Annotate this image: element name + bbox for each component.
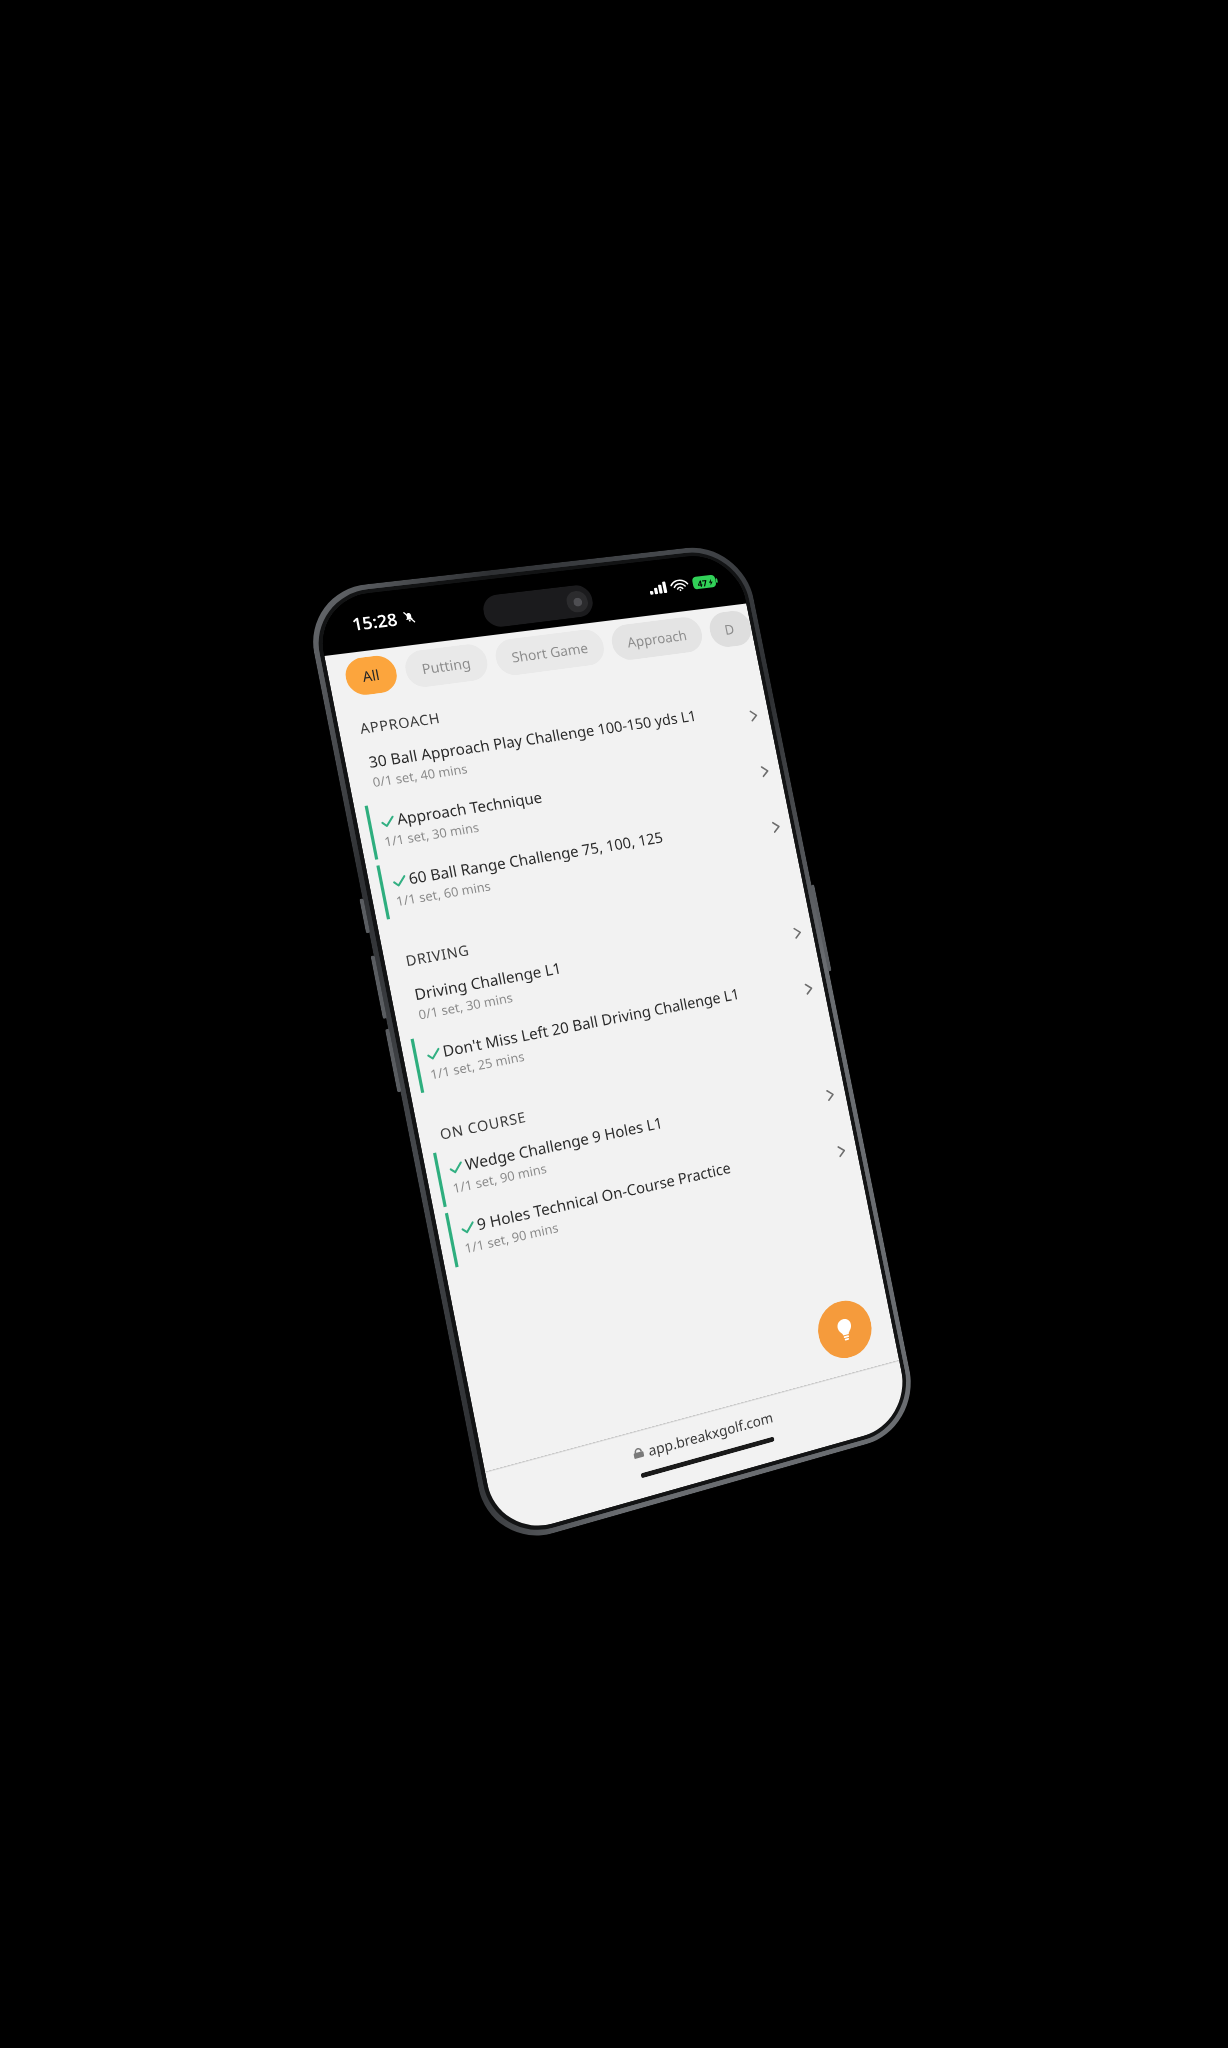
staticText: Driving Challenge L1 — [413, 957, 563, 1004]
staticText: 0/1 set, 30 mins — [417, 989, 515, 1024]
staticText: Short Game — [510, 638, 590, 666]
staticText: APPROACH — [358, 708, 442, 738]
staticText: 1/1 set, 90 mins — [451, 1160, 548, 1197]
staticText: Putting — [420, 653, 473, 678]
button[interactable]: Putting — [402, 642, 491, 689]
staticText: 1/1 set, 90 mins — [463, 1219, 560, 1257]
staticText: 0/1 set, 40 mins — [371, 760, 469, 791]
staticText: 1/1 set, 25 mins — [429, 1048, 526, 1083]
button[interactable]: New practice — [813, 1295, 876, 1364]
button[interactable]: Approach Technique — [354, 741, 785, 864]
button[interactable]: Approach — [609, 615, 705, 662]
staticText: Wedge Challenge 9 Holes L1 — [463, 1112, 664, 1174]
staticText: 9 Holes Technical On-Course Practice — [475, 1157, 732, 1234]
staticText: Driving — [723, 619, 738, 639]
button[interactable]: Driving Challenge L1 — [388, 902, 818, 1038]
button[interactable]: Driving — [706, 609, 754, 649]
button[interactable]: 30 Ball Approach Play Challenge 100-150 … — [342, 686, 774, 805]
staticText: DRIVING — [404, 940, 471, 970]
staticText: app.breakxgolf.com — [646, 1407, 775, 1460]
staticText: 15:28 — [350, 607, 400, 636]
staticText: Don't Miss Left 20 Ball Driving Challeng… — [441, 983, 741, 1061]
button[interactable]: 60 Ball Range Challenge 75, 100, 125 — [365, 797, 797, 924]
button[interactable]: 9 Holes Technical On-Course Practice — [434, 1120, 862, 1273]
staticText: Approach Technique — [395, 787, 544, 829]
button[interactable]: Wedge Challenge 9 Holes L1 — [422, 1064, 851, 1213]
staticText: 1/1 set, 60 mins — [395, 877, 492, 910]
staticText: ON COURSE — [438, 1107, 528, 1144]
staticText: 47 — [696, 576, 709, 589]
staticText: 1/1 set, 30 mins — [383, 819, 481, 851]
staticText: 60 Ball Range Challenge 75, 100, 125 — [407, 827, 665, 888]
button[interactable]: All — [342, 654, 400, 697]
button[interactable]: Don't Miss Left 20 Ball Driving Challeng… — [400, 958, 829, 1098]
staticText: All — [361, 665, 382, 686]
button[interactable]: Short Game — [492, 627, 607, 677]
staticText: 30 Ball Approach Play Challenge 100-150 … — [367, 705, 698, 772]
staticText: Approach — [625, 626, 689, 651]
